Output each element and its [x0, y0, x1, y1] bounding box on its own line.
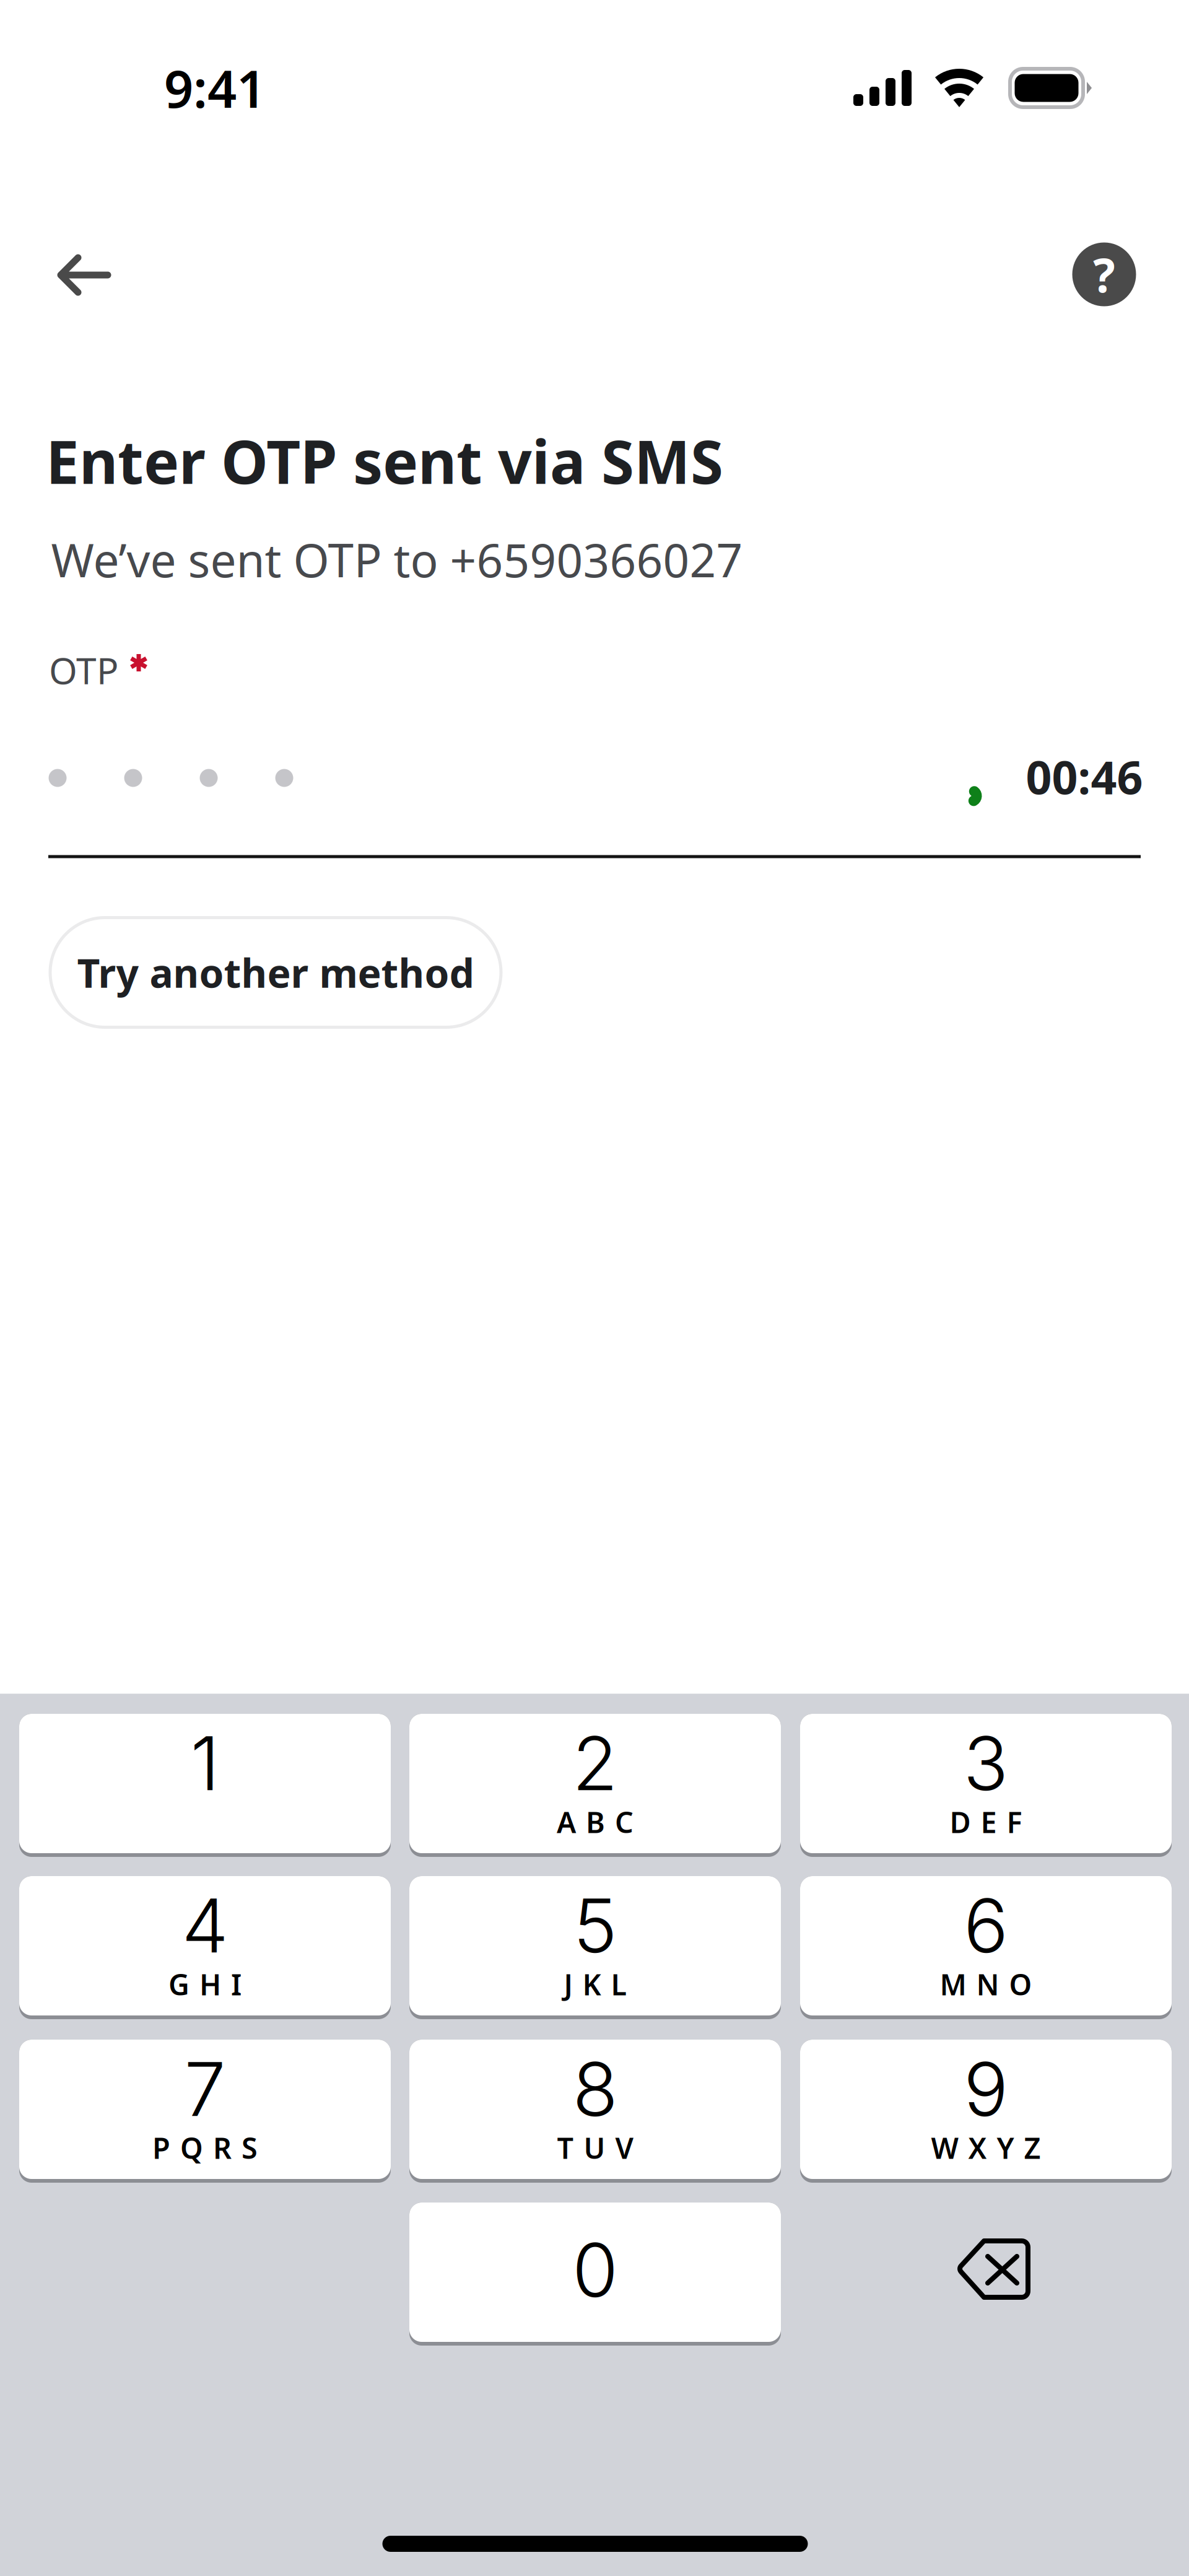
staticText: 0: [572, 2225, 618, 2315]
button[interactable]: Delete: [800, 2203, 1172, 2342]
staticText: ?: [1093, 244, 1115, 305]
staticText: W: [931, 2128, 958, 2167]
staticText: 8: [573, 2044, 618, 2134]
button[interactable]: 3: [800, 1712, 1172, 1855]
button[interactable]: 2: [409, 1712, 781, 1855]
button[interactable]: 8: [409, 2038, 781, 2181]
staticText: 2: [572, 1718, 618, 1808]
staticText: S: [242, 2128, 258, 2167]
staticText: Q: [180, 2128, 203, 2167]
staticText: K: [582, 1965, 601, 2003]
staticText: U: [584, 2128, 605, 2167]
staticText: 00:46: [1026, 747, 1143, 807]
staticText: A: [557, 1803, 576, 1841]
staticText: J: [564, 1965, 573, 2003]
button[interactable]: Try another method: [50, 918, 501, 1027]
button[interactable]: 0: [409, 2201, 781, 2344]
staticText: Enter OTP sent via SMS: [46, 421, 723, 500]
staticText: O: [1009, 1965, 1032, 2003]
staticText: T: [557, 2128, 574, 2167]
staticText: Z: [1024, 2128, 1041, 2167]
staticText: 7: [184, 2044, 226, 2134]
staticText: H: [199, 1965, 221, 2003]
staticText: M: [940, 1965, 966, 2003]
staticText: C: [615, 1803, 634, 1841]
button[interactable]: 5: [409, 1875, 781, 2018]
staticText: 4: [182, 1880, 228, 1970]
staticText: 9: [964, 2044, 1008, 2134]
button[interactable]: 4: [19, 1875, 391, 2018]
staticText: P: [152, 2128, 170, 2167]
staticText: F: [1007, 1803, 1022, 1841]
staticText: L: [611, 1965, 626, 2003]
staticText: 3: [963, 1718, 1008, 1808]
staticText: G: [168, 1965, 189, 2003]
button[interactable]: Back: [32, 222, 137, 328]
staticText: 1: [190, 1718, 220, 1808]
button[interactable]: 7: [19, 2038, 391, 2181]
staticText: B: [586, 1803, 605, 1841]
staticText: I: [231, 1965, 242, 2003]
staticText: E: [981, 1803, 997, 1841]
staticText: OTP: [49, 646, 118, 694]
staticText: Y: [997, 2128, 1014, 2167]
staticText: X: [968, 2128, 987, 2167]
staticText: D: [950, 1803, 971, 1841]
button[interactable]: 1: [19, 1712, 391, 1855]
staticText: V: [615, 2128, 633, 2167]
button[interactable]: Help: [1064, 234, 1144, 315]
button[interactable]: 9: [800, 2038, 1172, 2181]
staticText: N: [976, 1965, 999, 2003]
staticText: 9:41: [164, 54, 266, 122]
staticText: Try another method: [77, 946, 474, 999]
staticText: R: [213, 2128, 232, 2167]
staticText: 6: [964, 1880, 1008, 1970]
staticText: We’ve sent OTP to +6590366027: [51, 529, 743, 590]
staticText: 5: [573, 1880, 617, 1970]
button[interactable]: 6: [800, 1875, 1172, 2018]
